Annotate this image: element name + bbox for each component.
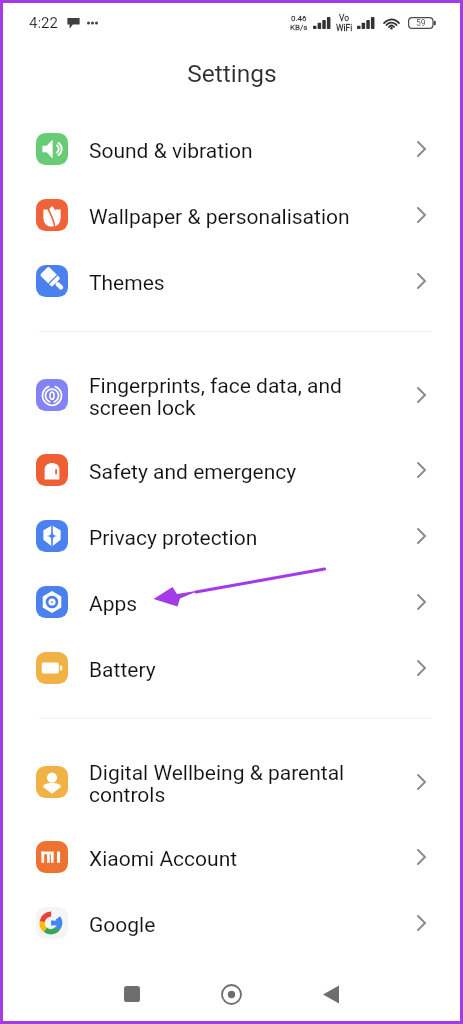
staticText: Themes [89,271,374,296]
staticText: Safety and emergency [89,460,374,485]
button[interactable]: Back [303,966,359,1022]
staticText: Vo [339,13,350,23]
button[interactable]: Recent apps [104,966,160,1022]
button[interactable]: Xiaomi Account [0,824,463,890]
staticText: Privacy protection [89,526,374,551]
button[interactable]: Battery [0,635,463,701]
button[interactable]: Wallpaper & personalisation [0,182,463,248]
button[interactable]: Fingerprints, face data, and screen lock [0,353,463,437]
button[interactable]: Themes [0,248,463,314]
button[interactable]: Google [0,890,463,956]
staticText: KB/s [290,23,308,32]
staticText: Apps [89,592,374,617]
staticText: Xiaomi Account [89,847,374,872]
staticText: Fingerprints, face data, and screen lock [89,374,374,421]
staticText: 4:22 [29,14,58,32]
staticText: WiFi [336,23,353,33]
staticText: Google [89,913,374,938]
button[interactable]: Privacy protection [0,503,463,569]
staticText: 0.46 [291,14,307,23]
staticText: Settings [187,59,277,88]
button[interactable]: Home [203,966,259,1022]
staticText: Wallpaper & personalisation [89,205,374,230]
button[interactable]: Apps [0,569,463,635]
staticText: Digital Wellbeing & parental controls [89,761,374,808]
button[interactable]: Digital Wellbeing & parental controls [0,740,463,824]
staticText: Sound & vibration [89,139,374,164]
button[interactable]: Sound & vibration [0,116,463,182]
button[interactable]: Safety and emergency [0,437,463,503]
staticText: 59 [416,18,426,28]
staticText: Battery [89,658,374,683]
